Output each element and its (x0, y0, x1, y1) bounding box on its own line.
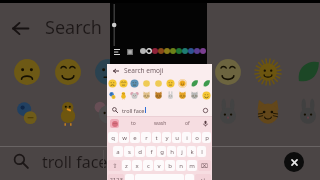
button[interactable]: Voice input (201, 119, 210, 128)
button[interactable]: Emoji (164, 77, 176, 89)
button[interactable]: Colour 11 (200, 48, 206, 54)
button[interactable]: m (187, 160, 197, 171)
button[interactable]: Emoji (133, 98, 163, 128)
button[interactable]: n (176, 160, 186, 171)
button[interactable]: Emoji (107, 77, 118, 89)
button[interactable]: w (119, 132, 129, 143)
button[interactable]: y (162, 132, 171, 143)
button[interactable]: v (154, 160, 164, 171)
staticText: i (186, 134, 188, 142)
button[interactable]: Back (112, 67, 120, 75)
button[interactable]: Colour 10 (194, 48, 200, 54)
button[interactable]: h (167, 146, 176, 157)
button[interactable]: Emoji (93, 57, 123, 87)
button[interactable]: c (143, 160, 153, 171)
button[interactable]: Emoji (200, 77, 212, 89)
button[interactable]: Emoji (53, 57, 83, 87)
button[interactable]: s (124, 146, 134, 157)
button[interactable]: z (122, 160, 131, 171)
button[interactable]: Emoji (293, 98, 320, 128)
button[interactable]: r (141, 132, 151, 143)
button[interactable]: Colour 7 (176, 48, 182, 54)
staticText: e (133, 134, 137, 142)
button[interactable]: Colour 8 (182, 48, 188, 54)
button[interactable]: Emoji (200, 89, 212, 101)
button[interactable]: Emoji (213, 98, 243, 128)
button[interactable]: Colour 4 (158, 48, 164, 54)
button[interactable]: Emoji (213, 57, 243, 87)
button[interactable]: l (197, 146, 206, 157)
button[interactable]: Emoji (164, 89, 176, 101)
button[interactable]: ⌧ (198, 160, 211, 171)
button[interactable]: . (185, 174, 194, 180)
button[interactable]: ?123 (108, 174, 124, 180)
button[interactable]: to (119, 117, 147, 129)
button[interactable]: of (174, 117, 201, 129)
button[interactable]: u (172, 132, 181, 143)
button[interactable]: Emoji (173, 98, 203, 128)
button[interactable]: Emoji (133, 57, 163, 87)
button[interactable]: Emoji (140, 77, 152, 89)
button[interactable]: ⇧ (108, 160, 121, 171)
button[interactable]: Colour 1 (140, 48, 146, 54)
button[interactable]: Text style (112, 47, 121, 56)
button[interactable]: Search (12, 152, 29, 169)
button[interactable]: Emoji (152, 89, 164, 101)
button[interactable]: b (165, 160, 175, 171)
button[interactable]: Emoji (293, 57, 320, 87)
button[interactable]: ↵ (195, 174, 211, 180)
button[interactable]: Emoji (188, 89, 200, 101)
button[interactable]: Back (10, 18, 31, 39)
button[interactable]: Colour 6 (170, 48, 176, 54)
staticText: Search emoji (124, 66, 164, 75)
staticText: wash (154, 120, 167, 127)
button[interactable]: Emoji (253, 57, 283, 87)
button[interactable]: f (146, 146, 156, 157)
staticText: o (195, 134, 199, 142)
staticText: ?123 (110, 176, 123, 180)
button[interactable]: wash (147, 117, 174, 129)
button[interactable]: a (113, 146, 123, 157)
button[interactable]: g (157, 146, 166, 157)
button[interactable]: t (152, 132, 161, 143)
button[interactable]: Emoji (93, 98, 123, 128)
button[interactable]: x (132, 160, 142, 171)
button[interactable]: k (187, 146, 196, 157)
button[interactable]: o (192, 132, 201, 143)
staticText: t (155, 134, 158, 142)
button[interactable]: Close (284, 152, 304, 172)
button[interactable]: Colour 3 (152, 48, 158, 54)
button[interactable]: Emoji (118, 89, 129, 101)
button[interactable]: d (135, 146, 145, 157)
button[interactable]: Colour 5 (164, 48, 170, 54)
button[interactable]: Colour 2 (146, 48, 152, 54)
button[interactable]: p (202, 132, 211, 143)
button[interactable]: Emoji (107, 89, 118, 101)
button[interactable]: , (125, 174, 134, 180)
button[interactable]: j (177, 146, 186, 157)
button[interactable]: Emoji (176, 89, 188, 101)
button[interactable]: Emoji (140, 89, 152, 101)
button[interactable]: Emoji (253, 98, 283, 128)
button[interactable]: Emoji (188, 77, 200, 89)
button[interactable]: Colour 9 (188, 48, 194, 54)
staticText: k (190, 148, 194, 156)
button[interactable]: Emoji suggestion (110, 119, 119, 128)
button[interactable]: e (130, 132, 140, 143)
button[interactable]: Emoji (173, 57, 203, 87)
button[interactable]: q (108, 132, 118, 143)
staticText: of (185, 120, 190, 127)
button[interactable]: Highlighter (125, 47, 134, 56)
button[interactable]: Emoji (129, 89, 140, 101)
button[interactable]: Emoji (176, 77, 188, 89)
button[interactable]: Emoji (129, 77, 140, 89)
button[interactable]: Emoji (12, 57, 42, 87)
button[interactable]: Emoji (53, 98, 83, 128)
button[interactable]: Emoji (152, 77, 164, 89)
button[interactable]: i (182, 132, 191, 143)
button[interactable]: Emoji (118, 77, 129, 89)
button[interactable]: Emoji (12, 98, 42, 128)
